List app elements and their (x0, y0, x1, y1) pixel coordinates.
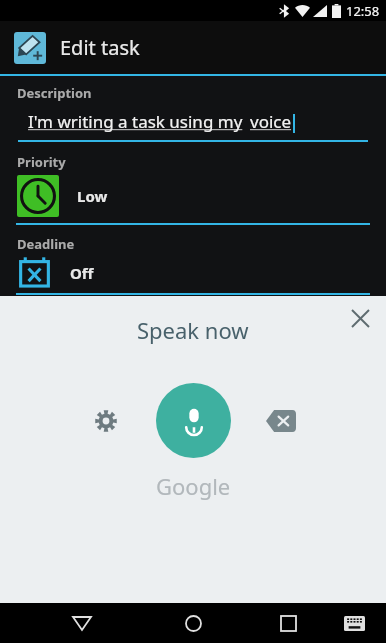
staticText: Priority (17, 153, 66, 171)
button[interactable] (0, 325, 386, 341)
staticText: Google (156, 471, 231, 501)
button[interactable]: Home (171, 603, 215, 643)
button[interactable]: Switch keyboard (334, 603, 374, 643)
staticText: Speak now (137, 315, 249, 345)
staticText: voice (250, 110, 292, 133)
staticText: Deadline (17, 235, 75, 253)
button[interactable]: Edit task (0, 21, 386, 74)
staticText: 12:58 (346, 2, 380, 20)
button[interactable]: Back (60, 603, 104, 643)
button[interactable]: I'm writing a task using my (0, 110, 386, 133)
staticText: Off (70, 263, 94, 283)
button[interactable]: Off (0, 256, 386, 289)
button[interactable]: Settings (82, 397, 130, 445)
button[interactable]: Low (0, 175, 386, 217)
staticText: Edit task (60, 34, 140, 61)
button[interactable]: Backspace (257, 397, 305, 445)
staticText: Low (77, 186, 108, 206)
staticText: I'm writing a task using my (28, 110, 243, 133)
button[interactable]: Recent apps (266, 603, 310, 643)
button[interactable]: Microphone (156, 383, 231, 458)
staticText: Description (17, 84, 92, 102)
button[interactable]: Close (342, 300, 378, 336)
